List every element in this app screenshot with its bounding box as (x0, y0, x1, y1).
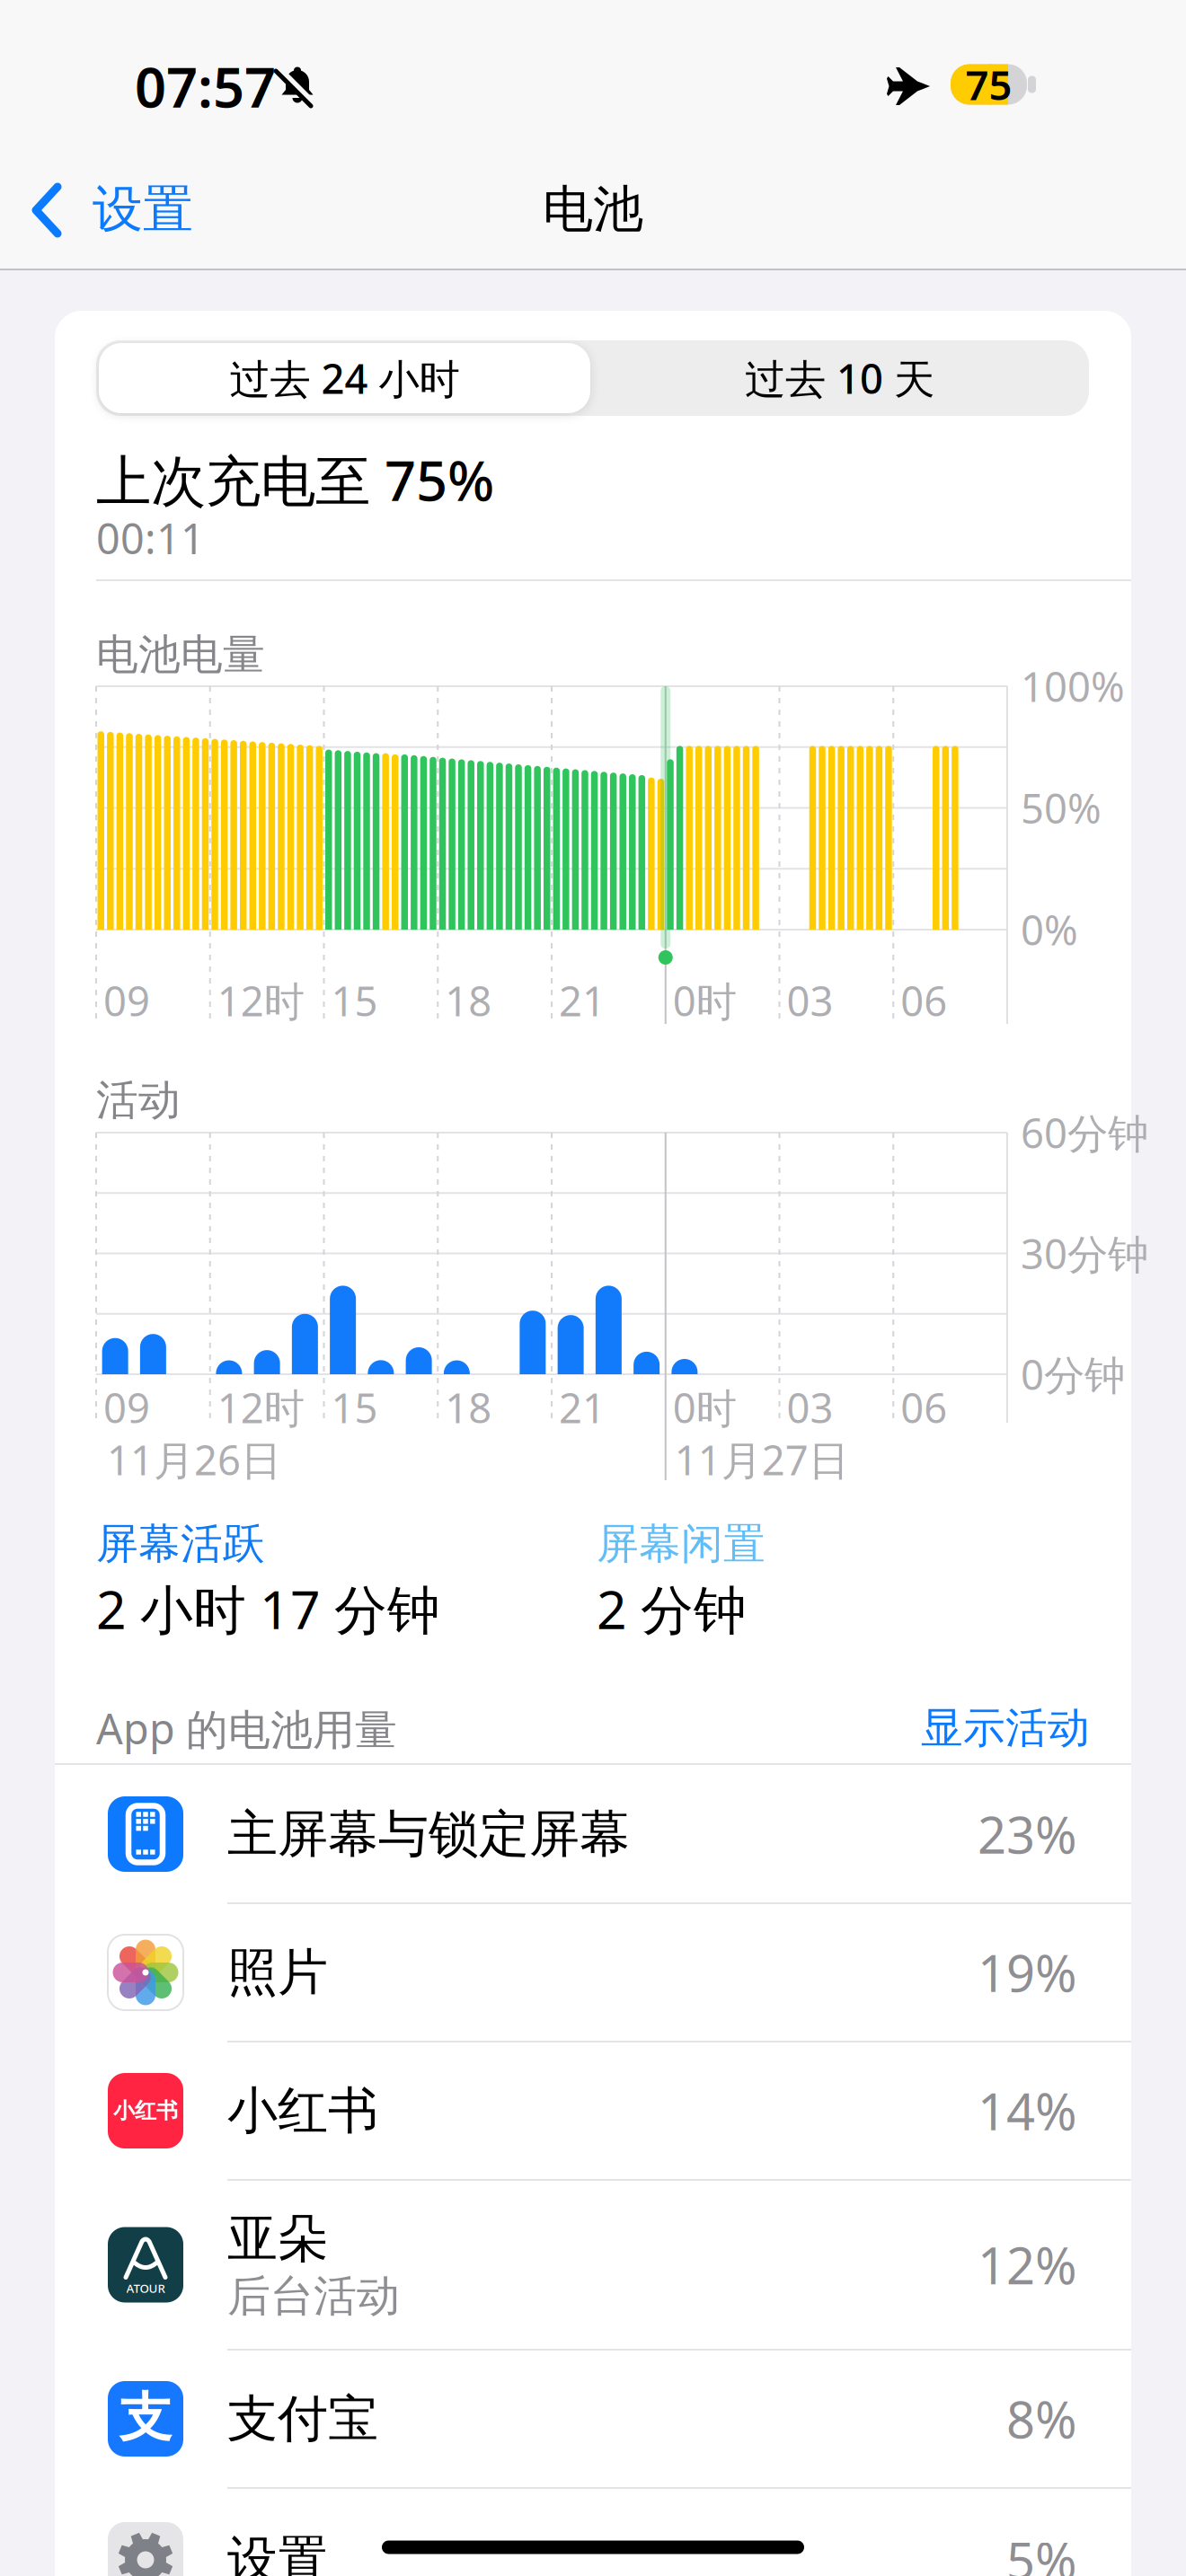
staticText: 12% (978, 2231, 1077, 2298)
staticText: 电池电量 (96, 629, 265, 680)
staticText: 显示活动 (921, 1702, 1090, 1754)
staticText: 15 (331, 1380, 378, 1434)
staticText: 03 (787, 974, 833, 1028)
staticText: 0时 (673, 974, 737, 1028)
staticText: 亚朵 (227, 2208, 328, 2270)
staticText: 06 (900, 974, 947, 1028)
button[interactable]: 返回设置 (27, 178, 243, 243)
staticText: 12时 (217, 974, 304, 1028)
staticText: 2 分钟 (597, 1574, 747, 1644)
staticText: 支 (119, 2386, 172, 2450)
staticText: 18 (445, 974, 492, 1028)
staticText: 21 (559, 1380, 606, 1434)
button[interactable]: 过去 10 天 (593, 343, 1087, 413)
staticText: 8% (1006, 2385, 1077, 2452)
button[interactable]: ATOUR (55, 2180, 1131, 2350)
button[interactable]: 支 (55, 2350, 1131, 2488)
staticText: 2 小时 17 分钟 (96, 1574, 440, 1644)
staticText: 21 (559, 974, 606, 1028)
staticText: 5% (1006, 2526, 1077, 2576)
staticText: 0时 (673, 1380, 737, 1434)
staticText: 14% (978, 2077, 1077, 2144)
staticText: ATOUR (126, 2280, 165, 2296)
staticText: 照片 (227, 1942, 328, 2003)
staticText: 过去 24 小时 (230, 351, 460, 405)
staticText: 上次充电至 75% (96, 443, 494, 516)
staticText: 100% (1021, 659, 1125, 713)
button[interactable]: 设置 (55, 2491, 1131, 2576)
staticText: 19% (978, 1939, 1077, 2006)
staticText: 屏幕活跃 (96, 1518, 265, 1570)
staticText: 活动 (96, 1075, 181, 1126)
staticText: 09 (103, 1380, 150, 1434)
staticText: 11月27日 (675, 1433, 849, 1487)
button[interactable]: 过去 24 小时 (99, 343, 590, 413)
staticText: 15 (331, 974, 378, 1028)
button[interactable]: 照片 (55, 1903, 1131, 2042)
staticText: 主屏幕与锁定屏幕 (227, 1803, 630, 1865)
staticText: 75 (965, 57, 1012, 111)
staticText: 09 (103, 974, 150, 1028)
staticText: 50% (1021, 781, 1102, 835)
button[interactable]: 小红书 (55, 2042, 1131, 2180)
staticText: 电池 (543, 178, 643, 240)
staticText: 30分钟 (1021, 1226, 1148, 1280)
staticText: 小红书 (113, 2098, 178, 2124)
staticText: 07:57 (135, 50, 276, 123)
staticText: 设置 (227, 2529, 328, 2576)
staticText: 小红书 (227, 2080, 378, 2142)
staticText: 后台活动 (227, 2270, 400, 2323)
staticText: 设置 (93, 178, 193, 240)
staticText: 支付宝 (227, 2388, 378, 2450)
staticText: 06 (900, 1380, 947, 1434)
staticText: App 的电池用量 (96, 1700, 397, 1756)
button[interactable]: 主屏幕与锁定屏幕 (55, 1765, 1131, 1903)
staticText: 60分钟 (1021, 1106, 1148, 1160)
staticText: 12时 (217, 1380, 304, 1434)
staticText: 03 (787, 1380, 833, 1434)
staticText: 18 (445, 1380, 492, 1434)
staticText: 11月26日 (107, 1433, 281, 1487)
staticText: 23% (978, 1801, 1077, 1868)
staticText: 过去 10 天 (745, 351, 934, 405)
staticText: 0% (1021, 903, 1078, 957)
staticText: 屏幕闲置 (597, 1518, 766, 1570)
staticText: 00:11 (96, 510, 205, 566)
staticText: 0分钟 (1021, 1347, 1125, 1401)
button[interactable]: 显示活动 (865, 1697, 1090, 1760)
